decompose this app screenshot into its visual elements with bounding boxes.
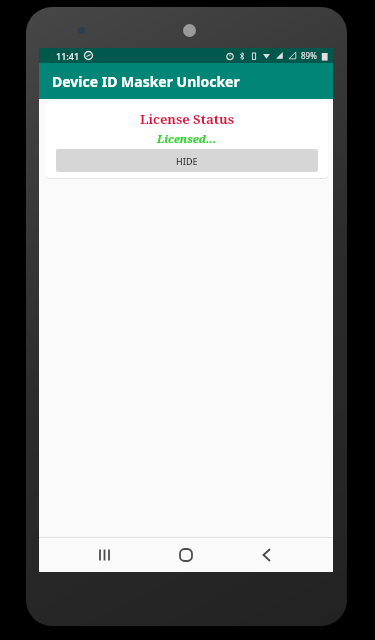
staticText: Device ID Masker Unlocker [52,72,240,91]
button[interactable] [65,538,145,572]
staticText: HIDE [176,155,198,167]
staticText: 11:41 [56,50,80,62]
staticText: Licensed... [157,131,217,146]
button[interactable]: HIDE [56,149,318,172]
button[interactable] [145,538,226,572]
staticText: License Status [140,110,234,128]
staticText: 89% [301,50,317,61]
button[interactable] [226,538,307,572]
